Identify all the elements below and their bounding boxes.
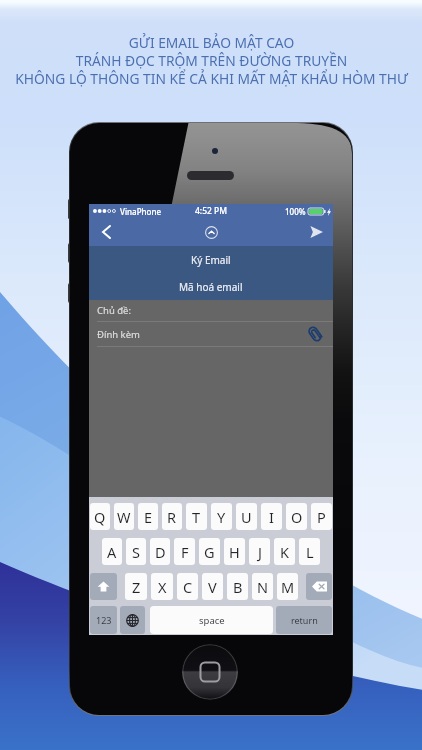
button[interactable]: V bbox=[202, 573, 223, 600]
staticText: X bbox=[158, 577, 167, 597]
button[interactable]: Q bbox=[90, 503, 110, 530]
button[interactable]: Mã hoá email bbox=[89, 273, 333, 300]
staticText: Z bbox=[132, 577, 141, 597]
staticText: Chủ đề: bbox=[97, 304, 131, 317]
staticText: Đính kèm bbox=[97, 328, 140, 341]
staticText: I bbox=[269, 507, 274, 527]
button[interactable]: K bbox=[274, 538, 295, 565]
staticText: U bbox=[241, 507, 252, 527]
staticText: VinaPhone bbox=[120, 206, 162, 217]
staticText: E bbox=[144, 507, 153, 527]
staticText: W bbox=[117, 507, 131, 527]
button[interactable]: D bbox=[150, 538, 170, 565]
button[interactable]: X bbox=[151, 573, 173, 600]
button[interactable]: F bbox=[174, 538, 195, 565]
button[interactable]: Z bbox=[125, 573, 147, 600]
button[interactable]: O bbox=[286, 503, 307, 530]
staticText: Mã hoá email bbox=[179, 280, 243, 294]
button[interactable]: Shift bbox=[90, 573, 117, 600]
button[interactable]: I bbox=[261, 503, 282, 530]
button[interactable]: U bbox=[236, 503, 257, 530]
button[interactable]: Đính kèm bbox=[89, 322, 333, 346]
staticText: G bbox=[204, 542, 215, 562]
staticText: C bbox=[183, 577, 193, 597]
staticText: space bbox=[199, 614, 225, 627]
button[interactable]: Back bbox=[89, 218, 123, 246]
button[interactable]: R bbox=[162, 503, 182, 530]
button[interactable]: return bbox=[276, 606, 332, 634]
button[interactable]: H bbox=[224, 538, 245, 565]
staticText: R bbox=[167, 507, 177, 527]
button[interactable]: G bbox=[199, 538, 220, 565]
staticText: Q bbox=[94, 507, 106, 527]
button[interactable]: Ký Email bbox=[89, 246, 333, 273]
staticText: Ký Email bbox=[191, 253, 231, 267]
staticText: 100% bbox=[285, 206, 306, 217]
staticText: D bbox=[155, 542, 166, 562]
staticText: L bbox=[306, 542, 314, 562]
button[interactable]: space bbox=[150, 606, 273, 634]
button[interactable]: B bbox=[227, 573, 248, 600]
button[interactable]: P bbox=[311, 503, 332, 530]
button[interactable]: C bbox=[177, 573, 198, 600]
button[interactable]: E bbox=[138, 503, 158, 530]
button[interactable]: A bbox=[102, 538, 122, 565]
button[interactable]: Change keyboard bbox=[120, 606, 145, 634]
staticText: return bbox=[291, 614, 318, 626]
staticText: Y bbox=[217, 507, 226, 527]
button[interactable]: T bbox=[186, 503, 207, 530]
staticText: T bbox=[192, 507, 201, 527]
staticText: N bbox=[257, 577, 269, 597]
staticText: S bbox=[132, 542, 140, 562]
staticText: 4:52 PM bbox=[195, 205, 228, 217]
button[interactable]: W bbox=[114, 503, 134, 530]
button[interactable]: L bbox=[299, 538, 320, 565]
staticText: P bbox=[317, 507, 326, 527]
staticText: B bbox=[233, 577, 243, 597]
button[interactable]: M bbox=[277, 573, 298, 600]
button[interactable]: Backspace bbox=[306, 573, 332, 600]
staticText: F bbox=[181, 542, 189, 562]
button[interactable]: S bbox=[126, 538, 146, 565]
button[interactable]: Expand bbox=[198, 219, 225, 246]
button[interactable]: N bbox=[252, 573, 273, 600]
button[interactable]: J bbox=[249, 538, 270, 565]
staticText: 123 bbox=[96, 614, 112, 626]
staticText: K bbox=[280, 542, 289, 562]
button[interactable]: 123 bbox=[90, 606, 117, 634]
staticText: M bbox=[281, 577, 295, 597]
staticText: O bbox=[291, 507, 303, 527]
button[interactable]: Chủ đề: bbox=[89, 300, 333, 321]
button[interactable]: Y bbox=[211, 503, 232, 530]
staticText: J bbox=[258, 542, 262, 562]
staticText: A bbox=[107, 542, 117, 562]
button[interactable]: Send bbox=[299, 218, 333, 246]
staticText: GỬI EMAIL BẢO MẬT CAO TRÁNH ĐỌC TRỘM TRÊ… bbox=[15, 33, 408, 88]
staticText: V bbox=[208, 577, 217, 597]
staticText: H bbox=[229, 542, 240, 562]
